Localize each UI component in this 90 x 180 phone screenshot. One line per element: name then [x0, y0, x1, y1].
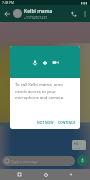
button[interactable]: More options: [80, 9, 89, 18]
button[interactable]: Recent apps: [14, 169, 25, 180]
staticText: CONTINUE: [58, 120, 76, 125]
button[interactable]: Contact photo: [13, 9, 22, 18]
button[interactable]: NOT NOW: [35, 118, 56, 127]
staticText: +11732101231: [24, 15, 48, 20]
button[interactable]: Back: [1, 8, 13, 20]
staticText: ▮ ▮ ▮: [81, 1, 88, 5]
button[interactable]: CONTINUE: [56, 118, 78, 127]
button[interactable]: Type a message: [2, 156, 75, 166]
staticText: Kelbi mama: [24, 8, 53, 15]
button[interactable]: Voice call: [68, 8, 80, 20]
staticText: To call Kelbi mama, omo needs access to …: [15, 82, 74, 100]
staticText: Hi: [74, 141, 78, 146]
button[interactable]: Back: [65, 169, 76, 180]
button[interactable]: Kelbi mama: [24, 8, 68, 20]
staticText: Type a message: [11, 159, 38, 164]
staticText: NOT NOW: [37, 120, 54, 125]
staticText: 7:38 PM: [2, 1, 14, 5]
button[interactable]: Record voice message: [77, 155, 88, 166]
button[interactable]: Home: [40, 169, 51, 180]
staticText: 10:15: [74, 146, 81, 149]
button[interactable]: Hi: [72, 140, 86, 150]
